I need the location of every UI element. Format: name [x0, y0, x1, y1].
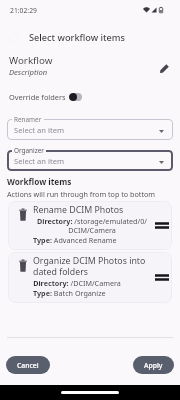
staticText: Description — [9, 67, 48, 77]
staticText: Organize DCIM Photos into dated folders — [33, 255, 151, 278]
staticText: Override folders — [9, 92, 66, 102]
staticText: Directory: /storage/emulated/0/DCIM/Came… — [33, 216, 151, 235]
staticText: Rename DCIM Photos — [33, 204, 124, 216]
staticText: Directory: /DCIM/Camera — [33, 278, 121, 288]
button[interactable]: Override folders — [8, 92, 82, 102]
button[interactable]: Delete — [8, 252, 172, 303]
staticText: Type: Advanced Rename — [33, 235, 117, 245]
button[interactable]: Edit — [156, 60, 172, 76]
button[interactable]: Delete — [19, 208, 27, 221]
staticText: Select an item — [14, 156, 65, 166]
staticText: Workflow items — [7, 176, 72, 187]
button[interactable]: Delete — [19, 259, 27, 272]
button[interactable]: Reorder — [154, 269, 170, 285]
button[interactable]: Delete — [8, 201, 172, 250]
button[interactable]: Cancel — [6, 356, 50, 374]
staticText: Select workflow items — [29, 31, 125, 44]
staticText: Actions will run through from top to bot… — [7, 189, 156, 199]
button[interactable]: Select an item — [7, 119, 173, 140]
staticText: Select an item — [14, 125, 65, 135]
button[interactable]: Apply — [133, 356, 174, 374]
staticText: Organizer — [14, 146, 44, 155]
staticText: Apply — [144, 361, 163, 370]
staticText: Cancel — [17, 361, 39, 370]
staticText: Type: Batch Organize — [33, 288, 106, 298]
button[interactable]: Select all — [0, 28, 180, 46]
staticText: Renamer — [14, 115, 42, 124]
staticText: 21:02:29 — [10, 6, 37, 15]
staticText: Workflow — [9, 54, 53, 67]
button[interactable]: Reorder — [154, 217, 170, 233]
button[interactable]: Select an item — [7, 150, 173, 171]
